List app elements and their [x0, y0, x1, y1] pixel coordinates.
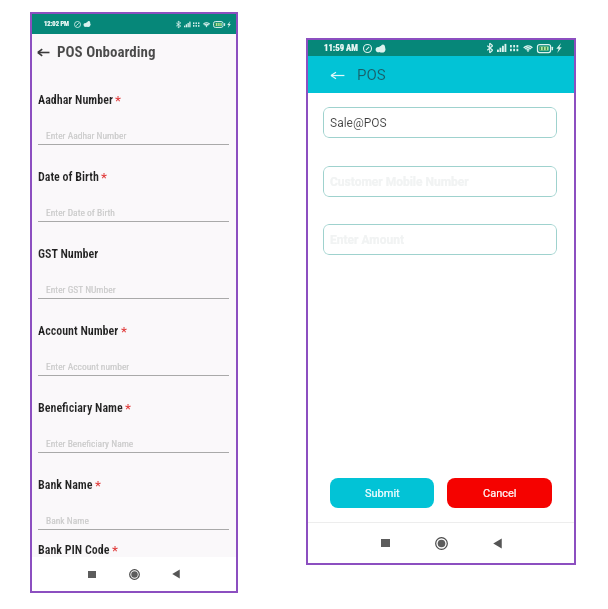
staticText: Cancel [483, 487, 517, 500]
staticText: Sale@POS [330, 116, 387, 130]
button[interactable]: Account Number [38, 324, 229, 401]
staticText: * [115, 93, 121, 108]
button[interactable]: Back [484, 530, 510, 556]
button[interactable]: Customer Mobile Number [323, 166, 557, 197]
staticText: Aadhar Number [38, 93, 113, 107]
staticText: GST Number [38, 247, 99, 261]
staticText: Enter Account number [46, 361, 130, 372]
button[interactable]: Enter Amount [323, 224, 557, 255]
button[interactable]: Back [163, 561, 189, 587]
staticText: Customer Mobile Number [330, 175, 469, 189]
button[interactable]: Recents [79, 561, 105, 587]
button[interactable]: Home [428, 530, 454, 556]
staticText: Submit [365, 487, 400, 500]
staticText: Bank Name [46, 515, 89, 526]
other: Back [328, 66, 346, 84]
staticText: 12:02 PM [44, 20, 70, 28]
staticText: Enter Beneficiary Name [46, 438, 134, 449]
button[interactable]: Back [35, 40, 236, 63]
staticText: 11:59 AM [324, 43, 358, 53]
staticText: POS Onboarding [57, 43, 156, 61]
button[interactable]: Bank PIN Code [38, 543, 118, 558]
staticText: Bank PIN Code [38, 543, 110, 557]
staticText: * [112, 543, 118, 558]
button[interactable]: Cancel [447, 478, 552, 508]
button[interactable]: Aadhar Number [38, 93, 229, 170]
staticText: POS [357, 66, 386, 84]
button[interactable]: Date of Birth [38, 170, 229, 247]
staticText: Enter Aadhar Number [46, 130, 127, 141]
button[interactable]: Bank Name [38, 478, 229, 555]
staticText: Enter Date of Birth [46, 207, 115, 218]
staticText: Account Number [38, 324, 119, 338]
staticText: * [101, 170, 107, 185]
button[interactable]: Recents [372, 530, 398, 556]
staticText: Bank Name [38, 478, 93, 492]
staticText: * [121, 324, 127, 339]
staticText: * [125, 401, 131, 416]
staticText: Enter GST NUmber [46, 284, 116, 295]
other: Back [35, 44, 51, 60]
button[interactable]: GST Number [38, 247, 229, 324]
staticText: Enter Amount [330, 233, 404, 247]
staticText: Date of Birth [38, 170, 99, 184]
button[interactable]: Beneficiary Name [38, 401, 229, 478]
button[interactable]: Sale@POS [323, 107, 557, 138]
staticText: * [95, 478, 101, 493]
staticText: Beneficiary Name [38, 401, 123, 415]
button[interactable]: Back [328, 56, 574, 93]
button[interactable]: Submit [330, 478, 434, 508]
button[interactable]: Home [121, 561, 147, 587]
